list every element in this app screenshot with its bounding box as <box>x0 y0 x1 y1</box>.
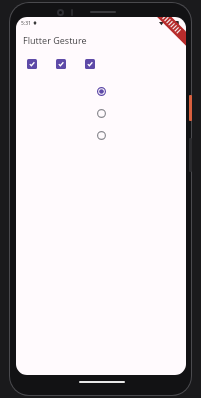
button[interactable]: Selected option <box>93 83 109 99</box>
staticText: Flutter Gesture <box>23 34 87 46</box>
button[interactable]: Checkbox <box>23 55 41 73</box>
button[interactable]: Checkbox <box>81 55 99 73</box>
button[interactable]: Option <box>93 127 109 143</box>
button[interactable]: Option <box>93 105 109 121</box>
button[interactable]: Checkbox <box>52 55 70 73</box>
staticText: 5:31 <box>21 20 31 27</box>
